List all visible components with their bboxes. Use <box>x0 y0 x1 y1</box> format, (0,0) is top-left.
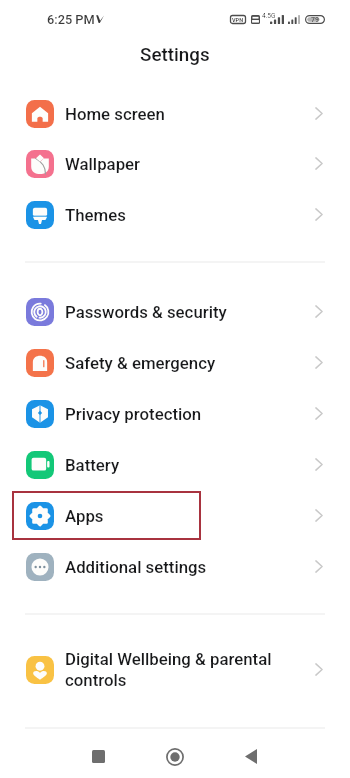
button[interactable]: Themes <box>0 189 350 240</box>
staticText: Additional settings <box>65 557 207 577</box>
button[interactable]: Passwords & security <box>0 286 350 337</box>
staticText: Digital Wellbeing & parental controls <box>65 649 272 690</box>
button[interactable]: Battery <box>0 439 350 490</box>
button[interactable]: Wallpaper <box>0 138 350 189</box>
staticText: Privacy protection <box>65 404 202 424</box>
staticText: Safety & emergency <box>65 353 216 373</box>
staticText: Passwords & security <box>65 302 227 322</box>
button[interactable]: Privacy protection <box>0 388 350 439</box>
button[interactable]: Digital Wellbeing & parental controls <box>0 644 350 695</box>
button[interactable]: Apps <box>0 490 350 541</box>
staticText: Themes <box>65 205 126 225</box>
button[interactable]: Home <box>150 732 199 778</box>
staticText: Settings <box>140 44 210 66</box>
button[interactable]: Recent apps <box>74 732 123 778</box>
staticText: 4.5G <box>262 12 276 20</box>
staticText: Battery <box>65 455 120 475</box>
staticText: VPN <box>232 17 244 23</box>
staticText: Wallpaper <box>65 154 141 174</box>
button[interactable]: Additional settings <box>0 541 350 592</box>
staticText: Home screen <box>65 104 165 124</box>
staticText: Apps <box>65 506 104 526</box>
button[interactable]: Home screen <box>0 88 350 139</box>
button[interactable]: Safety & emergency <box>0 337 350 388</box>
button[interactable]: Back <box>226 732 275 778</box>
staticText: 6:25 PM <box>47 12 95 27</box>
staticText: 79 <box>311 16 319 24</box>
